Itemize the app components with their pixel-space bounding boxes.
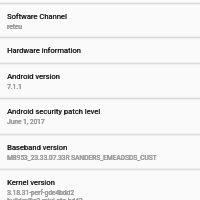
staticText: builder@c3-miui-ota-bd43 [7, 197, 83, 200]
button[interactable]: Hardware information [0, 38, 200, 63]
button[interactable]: Software Channel [0, 4, 200, 37]
button[interactable]: Android security patch level [0, 99, 200, 134]
staticText: Baseband version [7, 143, 68, 152]
staticText: reteu [7, 23, 22, 31]
staticText: M8953_23.33.07.33R SANDERS_EMEADSDS_CUST [7, 154, 157, 162]
button[interactable]: Baseband version [0, 135, 200, 169]
staticText: Android version [7, 72, 60, 81]
staticText: 7.1.1 [7, 83, 22, 91]
staticText: 3.18.31-perf-gde4bdd2 [7, 189, 74, 197]
staticText: Software Channel [7, 12, 67, 21]
staticText: Android security patch level [7, 107, 101, 116]
button[interactable]: Android version [0, 64, 200, 98]
button[interactable]: Kernel version [0, 170, 200, 200]
staticText: Hardware information [7, 46, 81, 55]
staticText: Kernel version [7, 178, 55, 187]
staticText: June 1, 2017 [7, 118, 45, 126]
